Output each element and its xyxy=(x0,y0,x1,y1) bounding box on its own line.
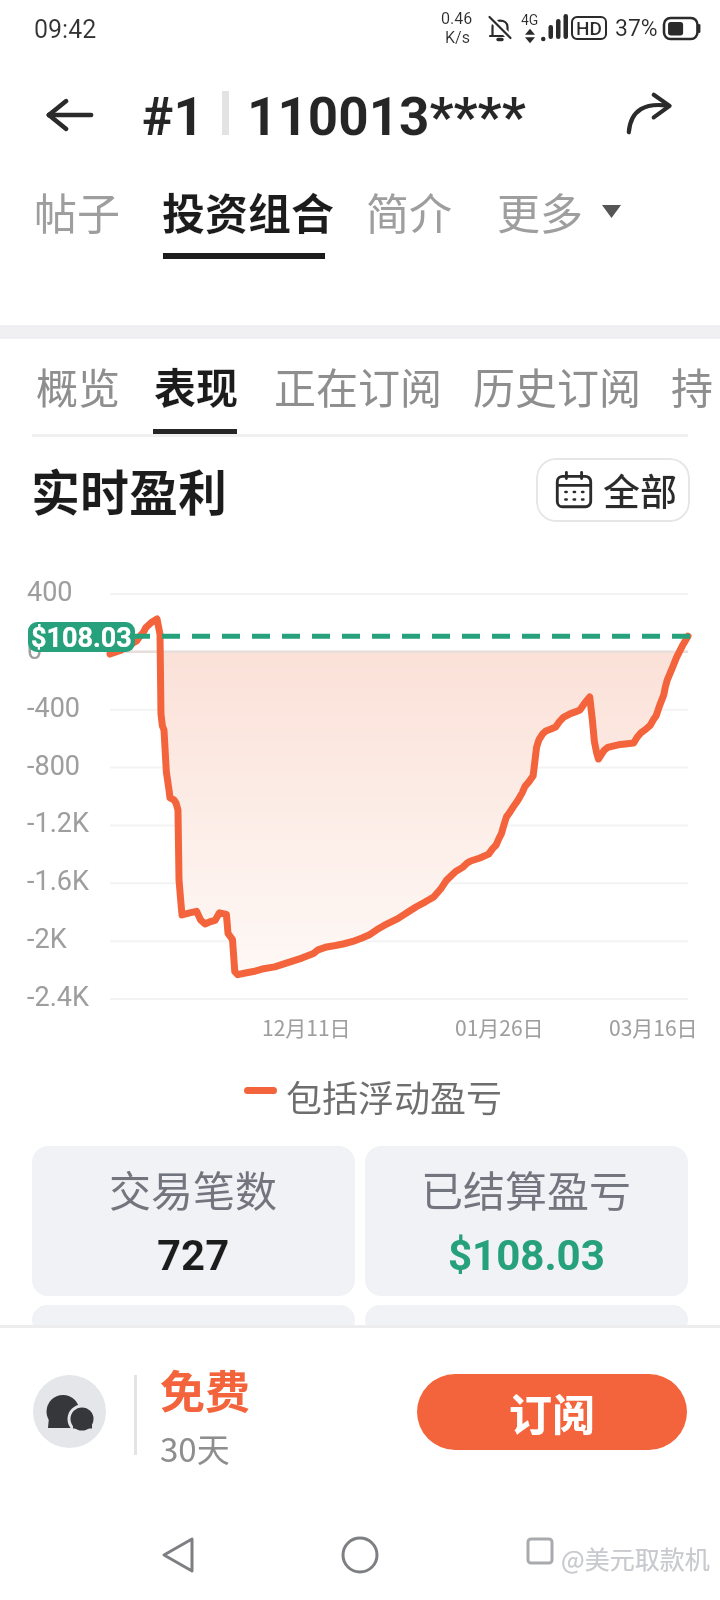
staticText: 包括浮动盈亏 xyxy=(286,1070,503,1122)
staticText: -800 xyxy=(27,750,80,782)
staticText: #1 xyxy=(142,86,204,148)
staticText: 订阅 xyxy=(509,1381,595,1443)
staticText: 持 xyxy=(671,355,714,416)
staticText: 09:42 xyxy=(34,15,97,44)
staticText: 12月11日 xyxy=(262,1012,351,1042)
staticText: 4G xyxy=(521,12,539,28)
staticText: 03月16日 xyxy=(609,1012,698,1042)
staticText: 简介 xyxy=(366,180,452,242)
button[interactable]: Avatar xyxy=(33,1375,106,1448)
staticText: 0.46 xyxy=(441,9,473,28)
staticText: @美元取款机 xyxy=(561,1540,710,1576)
button[interactable]: 持 xyxy=(671,355,714,416)
staticText: -2K xyxy=(27,923,67,955)
staticText: 历史订阅 xyxy=(473,355,642,416)
staticText: -1.6K xyxy=(27,865,89,897)
button[interactable]: 历史订阅 xyxy=(473,355,642,416)
staticText: 727 xyxy=(157,1231,230,1280)
staticText: 帖子 xyxy=(34,180,120,242)
staticText: -400 xyxy=(27,692,80,724)
button[interactable]: 帖子 xyxy=(34,180,120,242)
button[interactable]: Recents xyxy=(503,1514,577,1588)
button[interactable]: Back xyxy=(142,1518,216,1592)
staticText: 30天 xyxy=(160,1424,230,1472)
staticText: -2.4K xyxy=(27,981,89,1013)
staticText: 表现 xyxy=(154,355,239,416)
button[interactable]: 更多 xyxy=(497,180,621,242)
staticText: 110013**** xyxy=(247,86,526,148)
staticText: 投资组合 xyxy=(162,180,334,242)
staticText: 免费 xyxy=(160,1357,251,1422)
staticText: 更多 xyxy=(497,180,583,242)
staticText: 01月26日 xyxy=(455,1012,544,1042)
button[interactable]: 交易笔数 xyxy=(32,1146,355,1296)
staticText: 0 xyxy=(27,634,43,666)
staticText: $108.03 xyxy=(448,1231,605,1280)
staticText: 全部 xyxy=(603,463,677,517)
staticText: $108.03 xyxy=(31,622,132,652)
button[interactable]: 概览 xyxy=(36,355,121,416)
staticText: 实时盈利 xyxy=(31,454,228,525)
staticText: 400 xyxy=(27,576,73,608)
staticText: 概览 xyxy=(36,355,121,416)
staticText: 正在订阅 xyxy=(274,355,443,416)
staticText: HD xyxy=(576,17,602,39)
button[interactable]: 订阅 xyxy=(417,1374,687,1450)
staticText: K/s xyxy=(445,28,470,47)
button[interactable]: 投资组合 xyxy=(162,180,334,242)
button[interactable]: Back xyxy=(34,79,106,151)
button[interactable]: 表现 xyxy=(154,355,239,416)
staticText: 已结算盈亏 xyxy=(421,1158,632,1219)
button[interactable]: 正在订阅 xyxy=(274,355,443,416)
staticText: 37% xyxy=(615,15,658,42)
button[interactable]: 简介 xyxy=(366,180,452,242)
button[interactable]: Home xyxy=(323,1518,397,1592)
button[interactable]: 全部 xyxy=(536,458,690,522)
button[interactable]: Share xyxy=(612,79,684,151)
button[interactable]: 已结算盈亏 xyxy=(365,1146,688,1296)
staticText: -1.2K xyxy=(27,807,89,839)
staticText: 交易笔数 xyxy=(109,1158,278,1219)
